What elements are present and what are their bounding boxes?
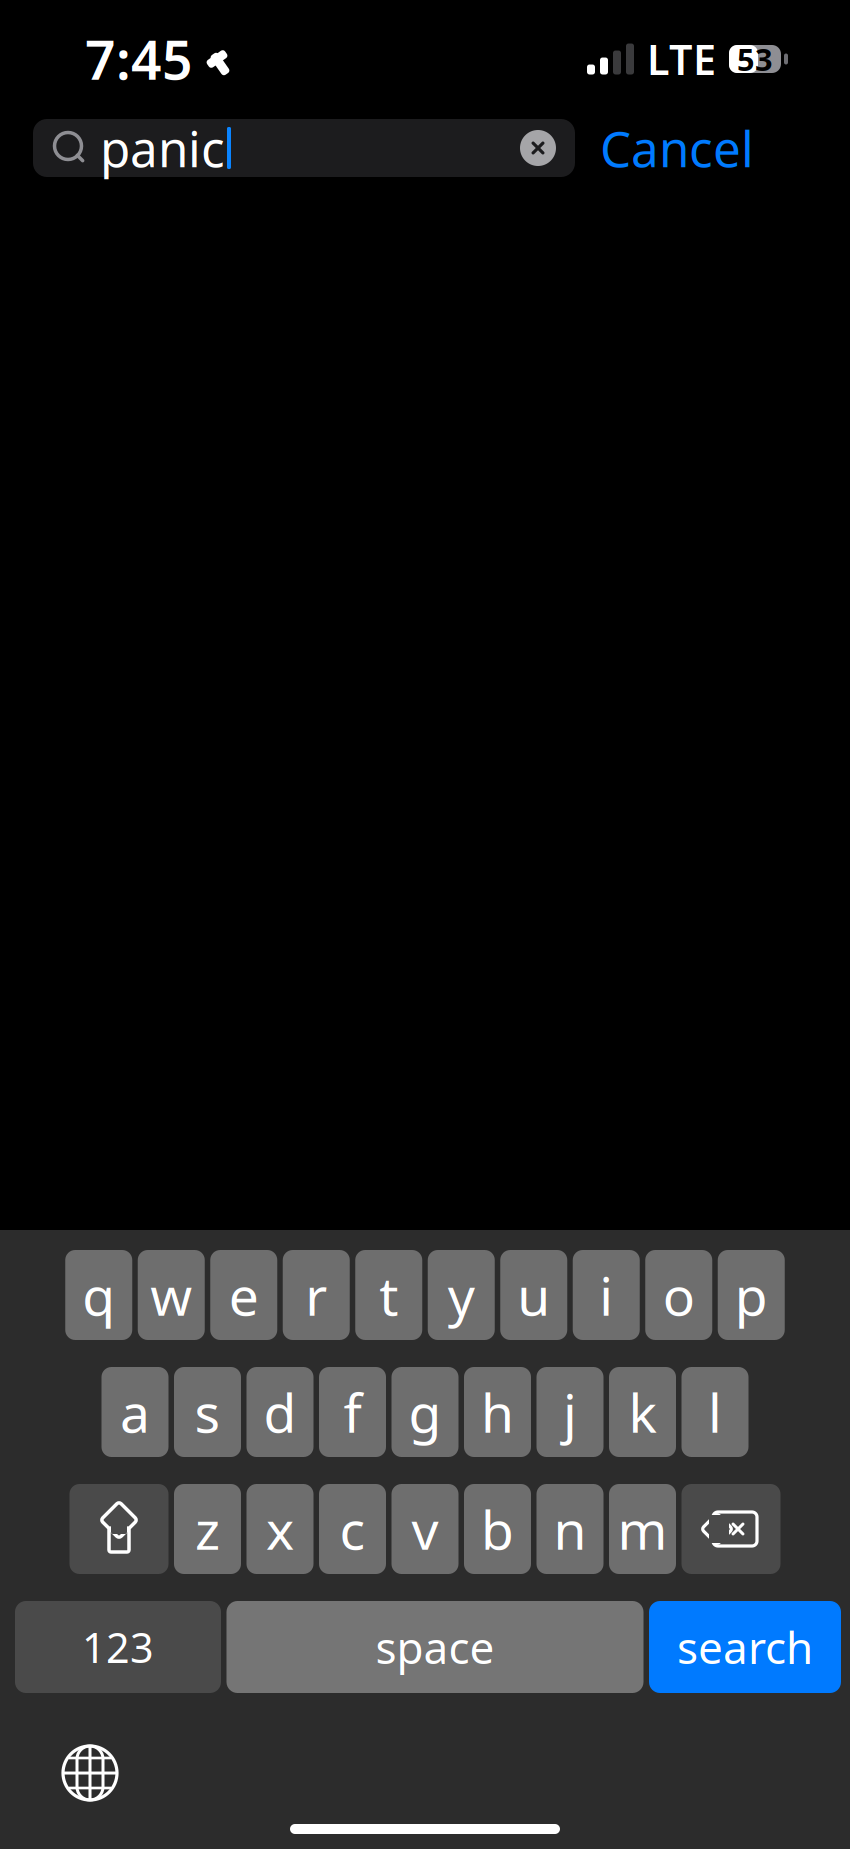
button[interactable]: c (319, 1484, 386, 1574)
staticText: search (677, 1618, 813, 1676)
button[interactable]: g (391, 1367, 458, 1457)
button[interactable]: f (319, 1367, 386, 1457)
staticText: l (708, 1377, 722, 1447)
button[interactable]: o (645, 1250, 712, 1340)
staticText: a (120, 1377, 150, 1447)
staticText: space (375, 1618, 494, 1676)
button[interactable]: j (536, 1367, 603, 1457)
button[interactable]: q (65, 1250, 132, 1340)
staticText: 7:45 (85, 24, 193, 94)
button[interactable]: u (500, 1250, 567, 1340)
button[interactable]: t (355, 1250, 422, 1340)
button[interactable]: b (464, 1484, 531, 1574)
button[interactable]: Delete (681, 1484, 780, 1574)
staticText: m (617, 1494, 667, 1564)
button[interactable]: s (174, 1367, 241, 1457)
button[interactable]: x (246, 1484, 313, 1574)
staticText: n (553, 1494, 586, 1564)
staticText: k (628, 1377, 656, 1447)
staticText: 123 (82, 1620, 154, 1674)
staticText: 53 (737, 39, 773, 79)
button[interactable]: search (649, 1601, 841, 1693)
staticText: i (599, 1260, 613, 1330)
staticText: z (195, 1494, 220, 1564)
staticText: e (229, 1260, 259, 1330)
staticText: u (517, 1260, 550, 1330)
button[interactable]: Switch keyboard (50, 1733, 130, 1813)
button[interactable]: p (718, 1250, 785, 1340)
button[interactable]: z (174, 1484, 241, 1574)
staticText: x (266, 1494, 294, 1564)
button[interactable]: 123 (15, 1601, 221, 1693)
staticText: d (263, 1377, 296, 1447)
button[interactable]: m (609, 1484, 676, 1574)
button[interactable]: n (536, 1484, 603, 1574)
button[interactable]: w (138, 1250, 205, 1340)
staticText: h (481, 1377, 514, 1447)
button[interactable]: y (428, 1250, 495, 1340)
staticText: w (150, 1260, 192, 1330)
staticText: j (563, 1377, 577, 1447)
staticText: t (379, 1260, 398, 1330)
staticText: Cancel (600, 115, 754, 181)
staticText: q (82, 1260, 115, 1330)
button[interactable]: a (101, 1367, 168, 1457)
staticText: g (408, 1377, 441, 1447)
button[interactable]: v (391, 1484, 458, 1574)
staticText: r (305, 1260, 327, 1330)
button[interactable]: d (246, 1367, 313, 1457)
button[interactable]: h (464, 1367, 531, 1457)
button[interactable]: Cancel (584, 119, 770, 177)
staticText: s (194, 1377, 220, 1447)
button[interactable]: panic (33, 119, 575, 177)
staticText: panic (100, 115, 225, 181)
button[interactable]: k (609, 1367, 676, 1457)
button[interactable]: i (573, 1250, 640, 1340)
staticText: f (343, 1377, 361, 1447)
staticText: p (735, 1260, 768, 1330)
staticText: LTE (647, 32, 716, 86)
button[interactable]: e (210, 1250, 277, 1340)
button[interactable]: space (226, 1601, 643, 1693)
staticText: v (411, 1494, 438, 1564)
button[interactable]: r (283, 1250, 350, 1340)
staticText: o (663, 1260, 695, 1330)
staticText: c (339, 1494, 365, 1564)
staticText: b (481, 1494, 514, 1564)
button[interactable]: l (681, 1367, 748, 1457)
button[interactable]: Shift (69, 1484, 168, 1574)
staticText: y (448, 1260, 475, 1330)
